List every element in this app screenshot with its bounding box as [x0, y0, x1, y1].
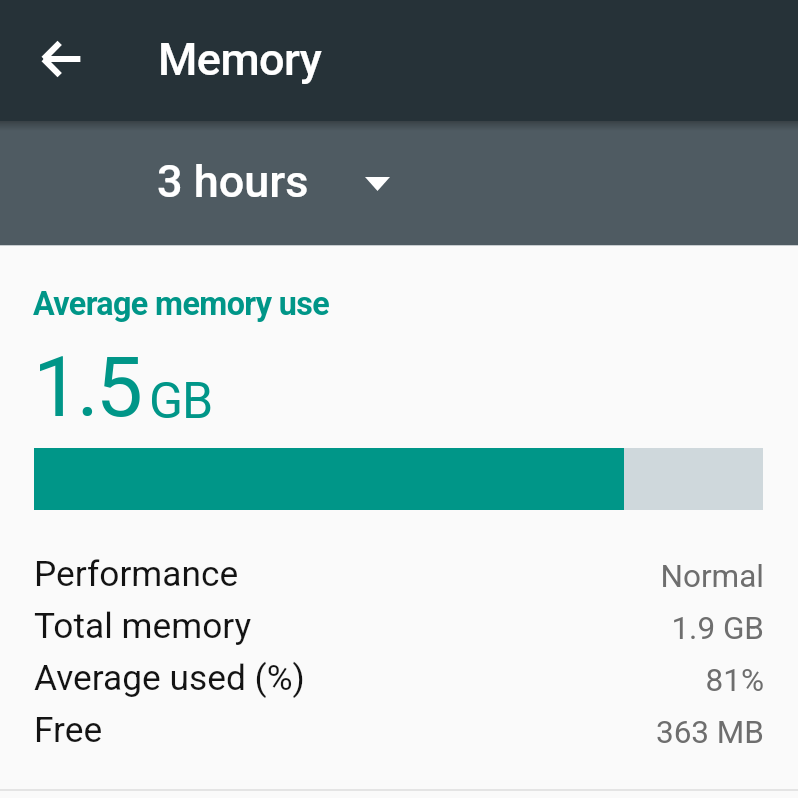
staticText: 81%	[705, 662, 764, 699]
button[interactable]: Free	[0, 703, 798, 755]
staticText: 363 MB	[655, 714, 764, 751]
staticText: Performance	[34, 553, 239, 594]
button[interactable]: 3 hours	[157, 157, 390, 210]
staticText: GB	[149, 372, 213, 431]
button[interactable]: Navigate up	[30, 27, 94, 91]
button[interactable]: Performance	[0, 547, 798, 599]
staticText: Free	[34, 709, 103, 750]
staticText: 1.9 GB	[671, 610, 764, 647]
button[interactable]: Total memory	[0, 599, 798, 651]
staticText: Average used (%)	[34, 657, 305, 698]
staticText: Memory	[158, 33, 322, 86]
staticText: 3 hours	[157, 155, 309, 208]
button[interactable]: Average used (%)	[0, 651, 798, 703]
staticText: Total memory	[34, 605, 252, 646]
staticText: Average memory use	[33, 285, 330, 323]
staticText: Normal	[660, 558, 764, 595]
staticText: 1.5	[33, 338, 140, 436]
